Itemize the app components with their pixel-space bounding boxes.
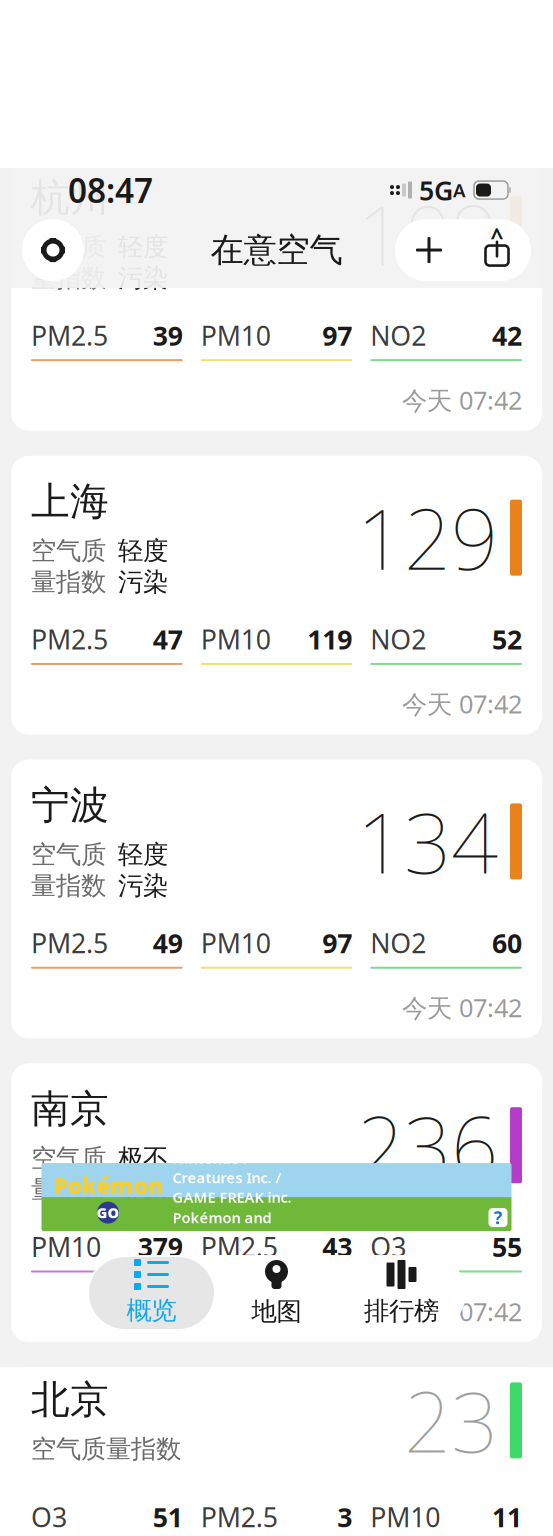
staticText: ^: [490, 221, 503, 252]
staticText: PM10: [201, 925, 271, 961]
staticText: 轻度污染: [118, 535, 168, 597]
staticText: 排行榜: [364, 1295, 439, 1327]
staticText: PM2.5: [31, 925, 108, 961]
staticText: 在意空气: [210, 230, 342, 270]
staticText: 55: [492, 1229, 522, 1264]
staticText: PM10: [201, 318, 271, 353]
staticText: NO2: [370, 318, 426, 353]
button[interactable]: 杭州: [11, 152, 542, 431]
staticText: 109: [357, 179, 498, 289]
button[interactable]: 概览: [89, 1257, 214, 1329]
staticText: 97: [322, 925, 352, 961]
button[interactable]: 广告：Pokémon GO: [41, 1163, 511, 1231]
staticText: 杭州: [31, 174, 109, 221]
button[interactable]: 宁波: [11, 760, 542, 1038]
staticText: 52: [492, 621, 522, 657]
staticText: 今天 07:42: [402, 991, 522, 1024]
staticText: 极不健康: [118, 1143, 168, 1205]
staticText: 今天 07:42: [402, 383, 522, 417]
staticText: 今天 07:42: [402, 1294, 522, 1328]
staticText: ©1995–2025 Nintendo / Creatures Inc. / G…: [172, 1129, 291, 1207]
staticText: Pokémon and Pokémon character names are …: [172, 1208, 312, 1305]
staticText: 60: [492, 925, 522, 961]
staticText: 空气质量指数: [31, 1143, 106, 1205]
staticText: NO2: [370, 621, 426, 657]
button[interactable]: 分享: [463, 219, 531, 281]
staticText: ?: [494, 1206, 502, 1229]
staticText: 11: [492, 1499, 522, 1535]
staticText: 51: [153, 1499, 183, 1535]
button[interactable]: 排行榜: [339, 1257, 464, 1329]
staticText: 空气质量指数: [31, 1434, 181, 1465]
staticText: GO: [96, 1203, 119, 1222]
staticText: 上海: [31, 478, 109, 525]
staticText: 宁波: [31, 782, 109, 829]
staticText: PM10: [31, 1229, 101, 1264]
staticText: 5G: [419, 172, 453, 208]
staticText: 轻度污染: [118, 231, 168, 294]
staticText: O3: [31, 1499, 67, 1535]
staticText: 236: [357, 1090, 498, 1200]
staticText: 轻度污染: [118, 839, 168, 901]
button[interactable]: 南京: [11, 1063, 542, 1342]
staticText: 379: [138, 1229, 183, 1264]
staticText: 47: [153, 621, 183, 657]
staticText: 97: [322, 318, 352, 353]
staticText: 空气质量指数: [31, 231, 106, 294]
staticText: 北京: [31, 1376, 109, 1424]
staticText: 今天 07:42: [402, 687, 522, 720]
staticText: Pokémon: [53, 1170, 162, 1201]
staticText: O3: [370, 1229, 406, 1264]
staticText: 119: [307, 621, 352, 657]
staticText: 概览: [126, 1295, 176, 1326]
staticText: PM10: [370, 1499, 440, 1535]
staticText: 49: [153, 925, 183, 961]
staticText: 08:47: [68, 168, 153, 212]
staticText: 南京: [31, 1085, 109, 1133]
staticText: NO2: [370, 925, 426, 961]
staticText: 空气质量指数: [31, 535, 106, 597]
staticText: 42: [492, 318, 522, 353]
staticText: PM2.5: [31, 621, 108, 657]
staticText: PM2.5: [31, 318, 108, 353]
button[interactable]: 添加城市: [395, 219, 463, 281]
staticText: 134: [357, 786, 498, 896]
staticText: 23: [404, 1365, 498, 1475]
staticText: 39: [153, 318, 183, 353]
button[interactable]: 上海: [11, 456, 542, 735]
button[interactable]: 地图: [214, 1257, 339, 1329]
staticText: PM10: [201, 621, 271, 657]
staticText: A: [453, 178, 466, 202]
staticText: 空气质量指数: [31, 839, 106, 901]
staticText: 3: [337, 1499, 352, 1535]
button[interactable]: 设置: [22, 219, 84, 281]
staticText: 129: [357, 483, 498, 593]
staticText: PM2.5: [201, 1499, 278, 1535]
staticText: 地图: [251, 1296, 301, 1327]
staticText: PM2.5: [201, 1229, 278, 1264]
staticText: 43: [322, 1229, 352, 1264]
